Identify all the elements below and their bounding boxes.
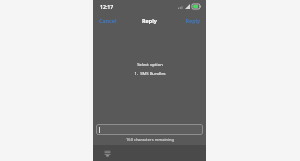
staticText: Cancel <box>99 17 117 24</box>
staticText: 1. SMS Bundles <box>134 71 166 77</box>
button[interactable]: Menu <box>102 148 112 158</box>
staticText: 160 characters remaining <box>126 137 174 142</box>
staticText: Reply <box>185 17 200 24</box>
button[interactable]: Cancel <box>93 15 123 26</box>
staticText: Reply <box>142 17 157 24</box>
staticText: Select option <box>137 62 163 68</box>
button[interactable] <box>96 124 203 135</box>
button[interactable]: Reply <box>179 15 206 26</box>
staticText: 12:17 <box>100 3 114 10</box>
